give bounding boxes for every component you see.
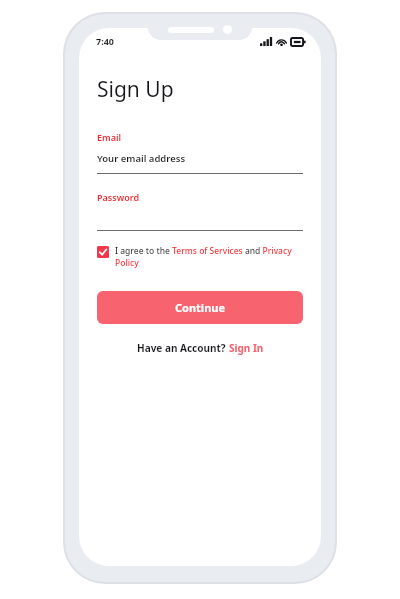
staticText: Continue [175,300,226,315]
staticText: Email [97,131,122,143]
staticText: Your email address [97,152,186,165]
staticText: Sign Up [97,75,174,104]
button[interactable]: Continue [97,291,303,324]
button[interactable]: Agree to terms checkbox [97,245,305,269]
staticText: Password [97,191,140,203]
staticText: 7:40 [96,35,114,47]
other: Agree to terms checkbox [97,246,109,258]
staticText: Have an Account? [137,341,229,355]
staticText: I agree to the Terms of Services and Pri… [115,245,305,269]
button[interactable]: Sign In [229,341,264,355]
